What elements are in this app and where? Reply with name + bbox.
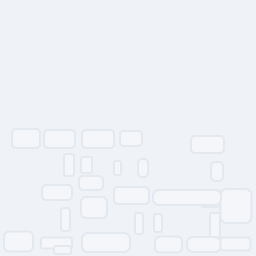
button[interactable]: Placeholder 8	[114, 161, 121, 175]
button[interactable]: Placeholder 23	[41, 237, 72, 248]
button[interactable]: Placeholder 5	[191, 136, 224, 153]
button[interactable]: Placeholder 20	[154, 214, 162, 232]
button[interactable]: Placeholder 3	[82, 130, 114, 148]
button[interactable]: Placeholder 4	[120, 131, 142, 146]
button[interactable]: Placeholder 15	[114, 187, 149, 204]
button[interactable]: Placeholder 9	[138, 159, 148, 177]
button[interactable]: Placeholder 1	[12, 129, 40, 148]
button[interactable]: Placeholder 26	[155, 236, 182, 252]
button[interactable]: Placeholder 22	[4, 231, 33, 251]
button[interactable]: Placeholder 17	[81, 197, 107, 218]
button[interactable]: Placeholder 6	[64, 154, 74, 176]
button[interactable]: Placeholder 16	[153, 190, 221, 205]
button[interactable]: Placeholder 28	[220, 237, 250, 250]
button[interactable]: Placeholder 14	[220, 189, 251, 223]
button[interactable]: Placeholder 13	[200, 190, 221, 207]
button[interactable]: Placeholder 11	[79, 176, 103, 190]
button[interactable]: Placeholder 19	[135, 213, 143, 234]
button[interactable]: Placeholder 21	[210, 213, 220, 238]
button[interactable]: Placeholder 10	[211, 162, 223, 181]
button[interactable]: Placeholder 18	[61, 208, 70, 231]
button[interactable]: Placeholder 24	[54, 246, 71, 254]
button[interactable]: Placeholder 12	[42, 185, 72, 200]
button[interactable]: Placeholder 27	[187, 237, 221, 252]
button[interactable]: Placeholder 25	[82, 233, 130, 252]
button[interactable]: Placeholder 2	[44, 130, 75, 148]
button[interactable]: Placeholder 7	[81, 157, 92, 173]
